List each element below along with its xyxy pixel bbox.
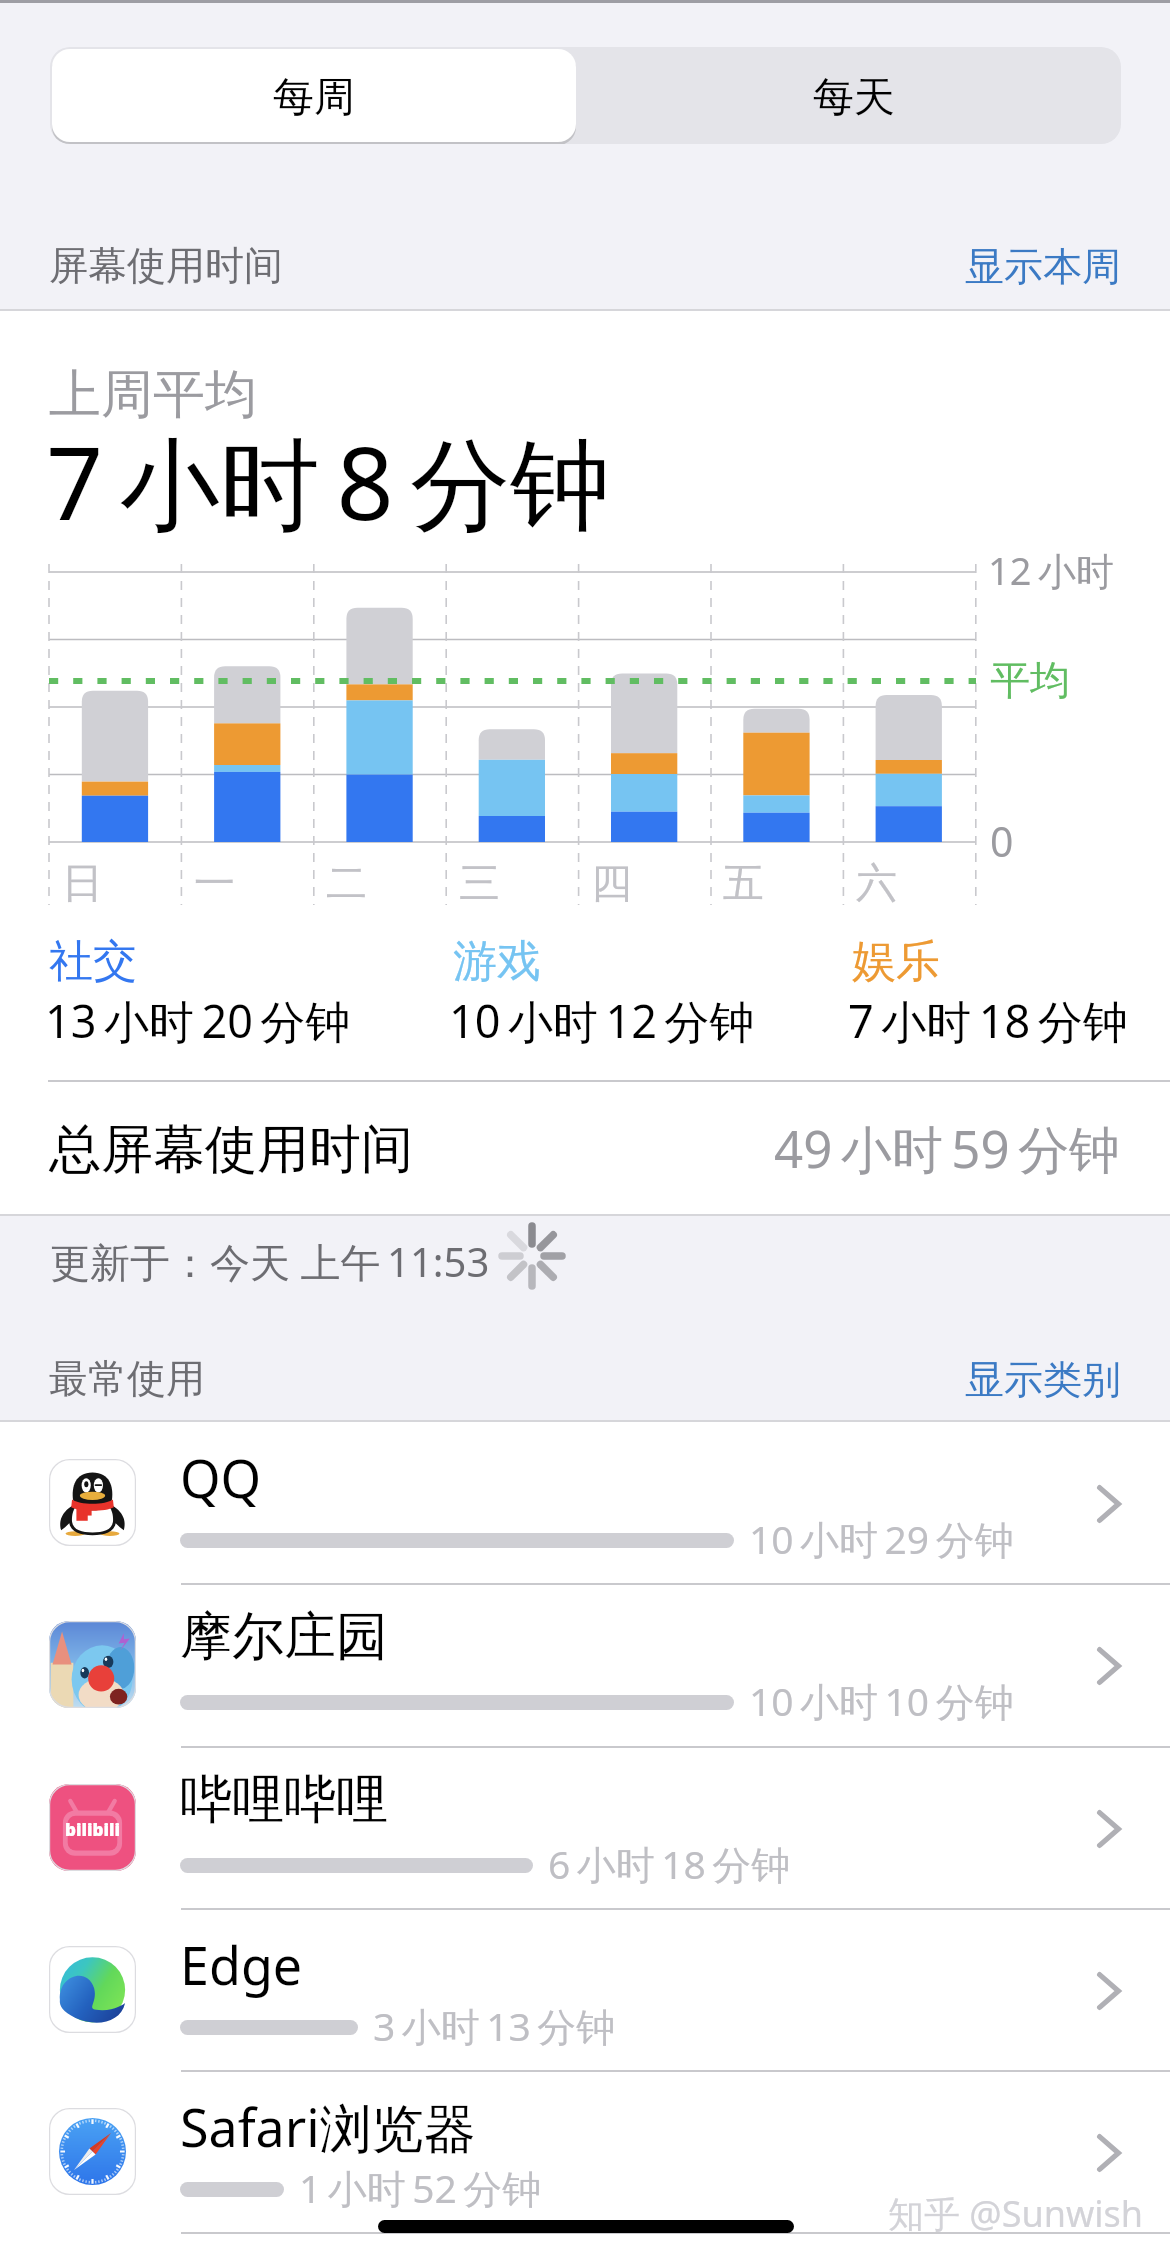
staticText: 13 小时 20 分钟 [45,990,351,1051]
staticText: 社交 [49,934,137,989]
staticText: 娱乐 [852,934,940,989]
staticText: 10 小时 12 分钟 [449,990,755,1051]
button[interactable]: 显示本周 [955,230,1130,292]
staticText: Safari浏览器 [180,2091,476,2162]
staticText: 更新于：今天 上午 11:53 [50,1234,490,1289]
staticText: 12 小时 [988,544,1114,596]
button[interactable]: 摩尔庄园 [0,1583,1170,1745]
staticText: 6 小时 18 分钟 [548,1837,791,1890]
staticText: 显示类别 [965,1355,1121,1404]
staticText: 每天 [813,72,895,124]
button[interactable]: QQ [0,1421,1170,1583]
staticText: 四 [591,858,632,910]
staticText: 最常使用 [49,1354,205,1403]
staticText: 上周平均 [49,362,257,428]
staticText: 0 [990,813,1014,869]
other: Open 摩尔庄园 [1097,1647,1121,1685]
staticText: 二 [326,858,367,910]
staticText: 三 [459,858,500,910]
other: Loading [492,1216,572,1296]
staticText: 游戏 [453,934,541,989]
staticText: 日 [62,858,103,910]
staticText: 一 [194,858,235,910]
button[interactable]: 显示类别 [955,1343,1130,1405]
staticText: 哔哩哔哩 [180,1767,388,1833]
staticText: bilibili [65,1818,120,1841]
staticText: 五 [723,858,764,910]
staticText: 总屏幕使用时间 [49,1117,413,1183]
staticText: 屏幕使用时间 [49,241,283,290]
staticText: 49 小时 59 分钟 [774,1113,1121,1183]
staticText: 六 [856,858,897,910]
other: Open QQ [1097,1485,1121,1523]
staticText: 7 小时 8 分钟 [46,413,611,550]
button[interactable]: 总屏幕使用时间 [0,1082,1170,1215]
staticText: 每周 [273,72,355,124]
staticText: 1 小时 52 分钟 [299,2161,542,2214]
staticText: 10 小时 29 分钟 [749,1512,1014,1565]
staticText: 显示本周 [965,242,1121,291]
staticText: 摩尔庄园 [180,1604,388,1670]
button[interactable]: bilibili [0,1746,1170,1908]
button[interactable]: 每周 [50,47,578,144]
button[interactable]: Safari浏览器 [0,2070,1170,2232]
staticText: 知乎 @Sunwish [888,2189,1144,2238]
staticText: QQ [180,1442,262,1513]
staticText: 平均 [990,655,1070,705]
button[interactable]: Edge [0,1908,1170,2070]
staticText: 10 小时 10 分钟 [749,1674,1014,1727]
other: Open Safari浏览器 [1097,2134,1121,2172]
staticText: 7 小时 18 分钟 [848,990,1128,1051]
staticText: Edge [180,1929,303,2000]
staticText: 3 小时 13 分钟 [373,1999,616,2052]
other: Open 哔哩哔哩 [1097,1810,1121,1848]
other: Open Edge [1097,1972,1121,2010]
button[interactable]: 每天 [582,47,1121,144]
